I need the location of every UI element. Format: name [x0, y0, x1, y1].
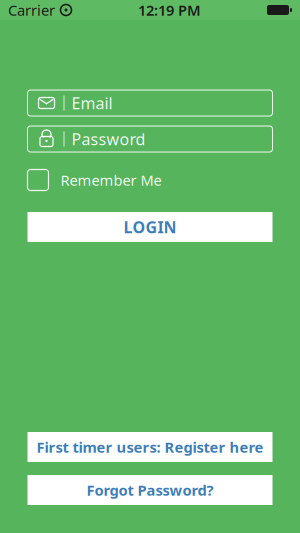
staticText: Email	[71, 92, 112, 114]
button[interactable]: Forgot Password?	[27, 475, 272, 505]
staticText: Password	[71, 128, 145, 150]
staticText: Remember Me	[60, 170, 161, 190]
button[interactable]: First timer users: Register here	[27, 432, 272, 462]
staticText: Forgot Password?	[86, 480, 213, 500]
staticText: 12:19 PM	[138, 0, 201, 20]
staticText: First timer users: Register here	[36, 437, 263, 457]
button[interactable]: Remember Me	[27, 169, 272, 191]
staticText: Carrier	[8, 0, 55, 20]
button[interactable]: LOGIN	[27, 212, 272, 242]
staticText: LOGIN	[123, 216, 176, 238]
